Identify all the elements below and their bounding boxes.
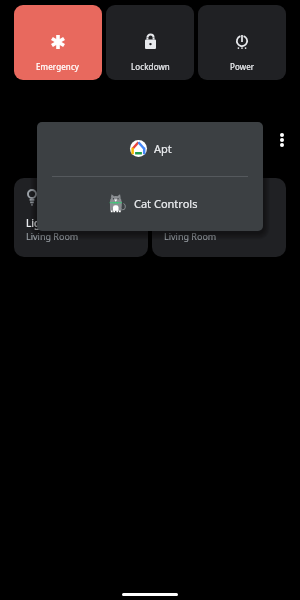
button[interactable]: Lockdown (106, 5, 194, 80)
staticText: Lockdown (131, 61, 170, 72)
button[interactable]: Power (198, 5, 286, 80)
staticText: Power (230, 61, 255, 72)
button[interactable]: Light (14, 178, 148, 257)
button[interactable]: Light (152, 178, 286, 257)
staticText: Light (26, 216, 51, 230)
button[interactable]: Emergency (14, 5, 102, 80)
button[interactable]: More options (270, 122, 294, 158)
staticText: Emergency (36, 61, 80, 72)
staticText: Apt (154, 141, 172, 156)
button[interactable]: Cat Controls (37, 177, 263, 231)
staticText: Living Room (164, 230, 217, 242)
button[interactable]: Apt (37, 122, 263, 176)
staticText: Cat Controls (134, 196, 198, 211)
staticText: Living Room (26, 230, 79, 242)
